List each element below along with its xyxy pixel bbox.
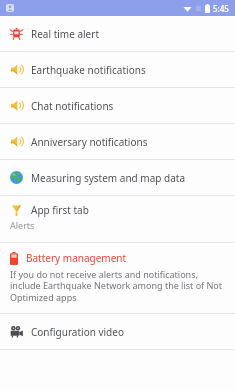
staticText: Anniversary notifications [31, 135, 148, 149]
staticText: Configuration video [31, 325, 124, 339]
button[interactable]: Earthquake notifications [0, 52, 235, 87]
staticText: Alerts [10, 219, 35, 231]
staticText: Chat notifications [31, 99, 114, 113]
other: Real time alert [10, 27, 23, 40]
staticText: If you do not receive alerts and notific… [10, 268, 225, 304]
staticText: Measuring system and map data [31, 171, 186, 185]
button[interactable]: Configuration video [0, 314, 235, 349]
button[interactable]: Measuring system and map data [0, 160, 235, 195]
other: App first tab [10, 204, 23, 217]
other: Chat notifications [10, 99, 23, 112]
button[interactable]: Anniversary notifications [0, 124, 235, 159]
button[interactable]: Battery management [0, 243, 235, 313]
other: Configuration video [10, 325, 23, 338]
staticText: 5:45 [213, 3, 229, 14]
staticText: Earthquake notifications [31, 63, 146, 77]
other: Measuring system and map data [10, 171, 23, 184]
other: Anniversary notifications [10, 135, 23, 148]
staticText: Battery management [26, 251, 127, 265]
staticText: Real time alert [31, 27, 99, 41]
button[interactable]: Chat notifications [0, 88, 235, 123]
button[interactable]: Real time alert [0, 16, 235, 51]
button[interactable]: App first tab [0, 196, 235, 242]
staticText: App first tab [31, 203, 89, 217]
other: Earthquake notifications [10, 63, 23, 76]
other: Battery management [10, 252, 18, 265]
